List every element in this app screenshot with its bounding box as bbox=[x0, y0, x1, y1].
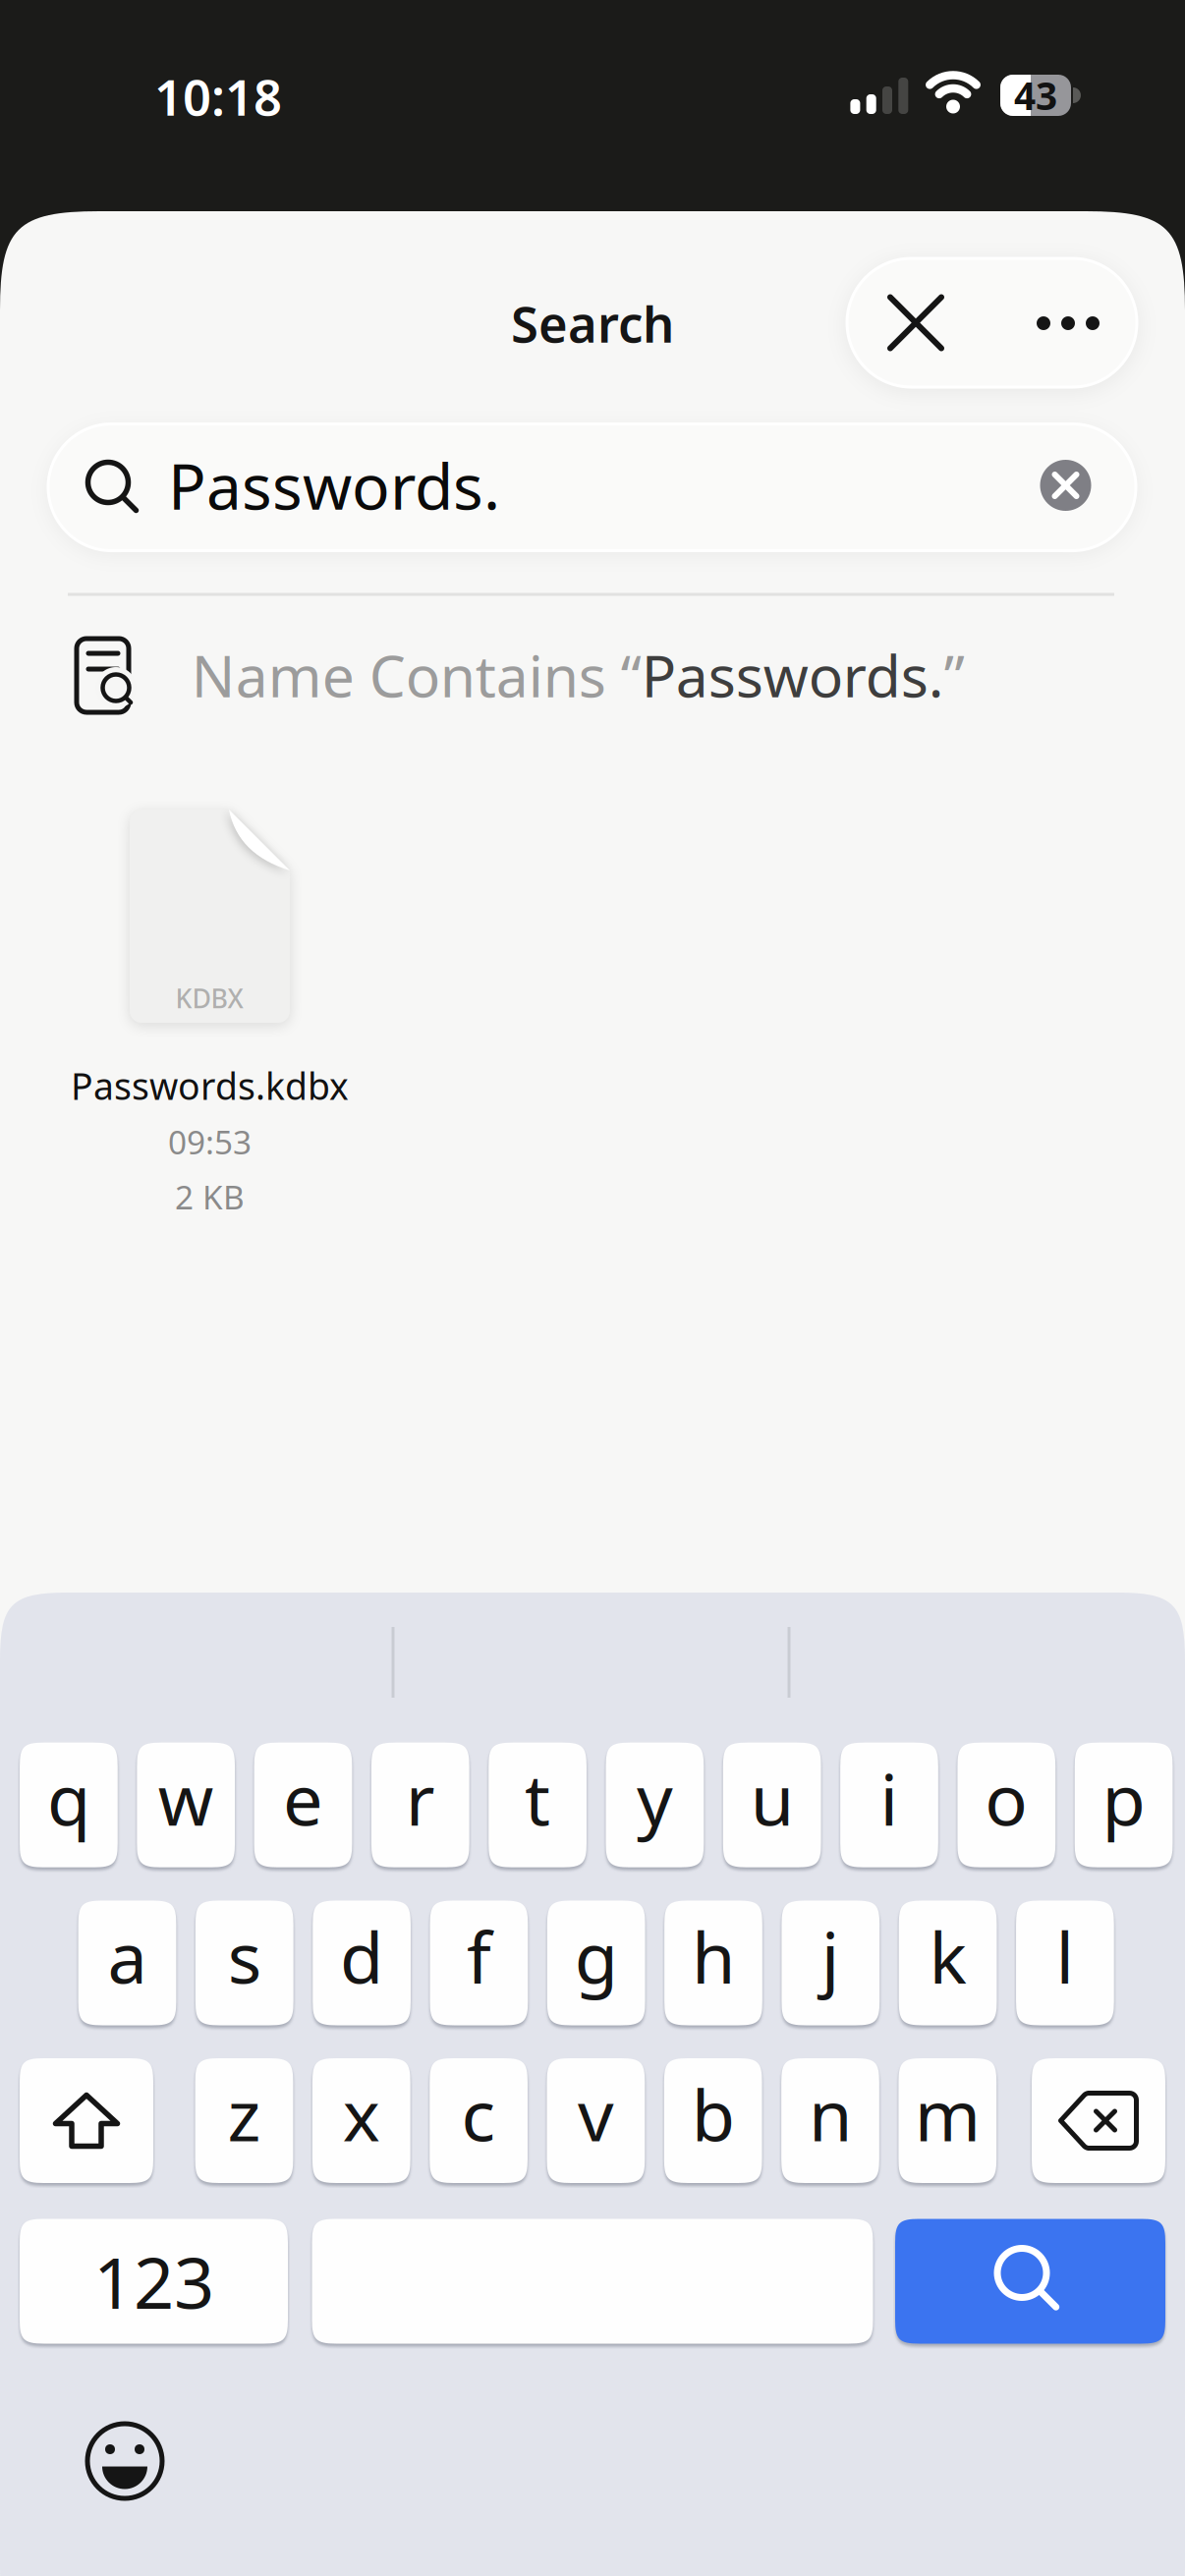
button[interactable]: Passwords.kdbx, 09:53, 2 KB bbox=[48, 801, 372, 1243]
staticText: s bbox=[228, 1909, 261, 2003]
button[interactable]: b bbox=[664, 2058, 762, 2183]
button[interactable]: r bbox=[371, 1743, 469, 1867]
staticText: t bbox=[525, 1751, 550, 1845]
button[interactable]: f bbox=[430, 1901, 528, 2025]
staticText: Passwords. bbox=[641, 637, 944, 713]
button[interactable]: More bbox=[999, 259, 1137, 388]
staticText: ” bbox=[944, 637, 965, 713]
staticText: x bbox=[343, 2067, 380, 2161]
button[interactable]: v bbox=[547, 2058, 645, 2183]
button[interactable]: Close bbox=[847, 258, 985, 387]
button[interactable]: s bbox=[196, 1901, 293, 2025]
staticText: z bbox=[227, 2067, 261, 2161]
staticText: d bbox=[340, 1909, 383, 2003]
staticText: 43 bbox=[1014, 70, 1057, 120]
staticText: b bbox=[691, 2067, 735, 2161]
staticText: h bbox=[692, 1909, 735, 2003]
button[interactable]: g bbox=[547, 1901, 645, 2025]
button[interactable]: l bbox=[1016, 1901, 1114, 2025]
button[interactable]: n bbox=[781, 2058, 879, 2183]
button[interactable]: w bbox=[137, 1743, 235, 1867]
staticText: Search bbox=[511, 290, 674, 356]
button[interactable]: x bbox=[312, 2058, 410, 2183]
button[interactable]: Numbers bbox=[20, 2219, 288, 2344]
button[interactable]: i bbox=[840, 1743, 938, 1867]
staticText: g bbox=[575, 1909, 618, 2003]
staticText: p bbox=[1102, 1751, 1145, 1845]
button[interactable]: Delete bbox=[1032, 2058, 1165, 2183]
staticText: q bbox=[47, 1751, 90, 1845]
button[interactable]: y bbox=[606, 1743, 704, 1867]
button[interactable]: t bbox=[489, 1743, 587, 1867]
staticText: i bbox=[880, 1751, 899, 1845]
button[interactable]: a bbox=[78, 1901, 176, 2025]
button[interactable]: j bbox=[782, 1901, 880, 2025]
button[interactable]: Emoji bbox=[81, 2417, 169, 2505]
staticText: 09:53 bbox=[168, 1120, 252, 1163]
staticText: e bbox=[283, 1751, 323, 1845]
staticText: l bbox=[1056, 1909, 1074, 2003]
staticText: Name Contains “ bbox=[191, 637, 641, 713]
staticText: KDBX bbox=[175, 981, 243, 1016]
staticText: a bbox=[108, 1909, 147, 2003]
button[interactable]: u bbox=[723, 1743, 821, 1867]
staticText: c bbox=[461, 2067, 496, 2161]
button[interactable]: z bbox=[195, 2058, 293, 2183]
button[interactable]: e bbox=[254, 1743, 352, 1867]
staticText: Passwords. bbox=[168, 444, 500, 527]
staticText: w bbox=[158, 1751, 214, 1845]
button[interactable]: h bbox=[664, 1901, 762, 2025]
button[interactable]: d bbox=[313, 1901, 411, 2025]
staticText: j bbox=[821, 1909, 840, 2003]
button[interactable]: Shift bbox=[20, 2058, 153, 2183]
staticText: f bbox=[467, 1909, 491, 2003]
staticText: 10:18 bbox=[154, 63, 282, 129]
staticText: y bbox=[637, 1751, 673, 1845]
button[interactable]: Search bbox=[895, 2219, 1165, 2344]
button[interactable]: q bbox=[20, 1743, 118, 1867]
button[interactable]: m bbox=[898, 2058, 996, 2183]
staticText: v bbox=[578, 2067, 614, 2161]
staticText: k bbox=[929, 1909, 966, 2003]
button[interactable]: o bbox=[957, 1743, 1055, 1867]
staticText: n bbox=[809, 2067, 852, 2161]
staticText: Passwords.kdbx bbox=[71, 1061, 349, 1110]
button[interactable]: k bbox=[899, 1901, 997, 2025]
button[interactable]: c bbox=[430, 2058, 528, 2183]
staticText: m bbox=[915, 2067, 980, 2161]
staticText: 2 KB bbox=[175, 1175, 245, 1218]
staticText: o bbox=[985, 1751, 1028, 1845]
button[interactable]: p bbox=[1075, 1743, 1173, 1867]
staticText: 123 bbox=[93, 2234, 214, 2328]
staticText: u bbox=[750, 1751, 794, 1845]
staticText: r bbox=[406, 1751, 435, 1845]
button[interactable]: Clear search text bbox=[1026, 446, 1105, 525]
